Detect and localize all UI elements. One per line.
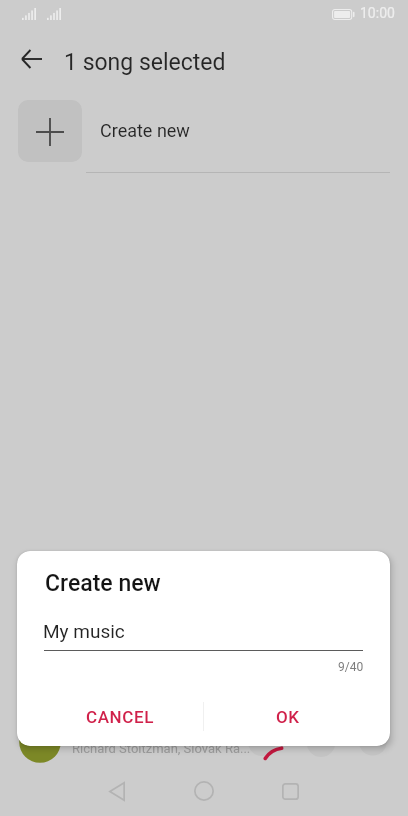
staticText: 9/40 <box>338 660 364 674</box>
staticText: CANCEL <box>86 707 155 727</box>
staticText: Richard Stoltzman, Slovak Ra... <box>72 741 251 756</box>
staticText: My music <box>43 620 125 642</box>
button[interactable]: CANCEL <box>66 696 174 738</box>
staticText: 10:00 <box>360 5 395 21</box>
button[interactable]: Back <box>7 35 55 83</box>
staticText: Create new <box>100 120 190 141</box>
button[interactable]: Home <box>181 768 226 814</box>
button[interactable]: Create new <box>0 86 408 174</box>
staticText: 1 song selected <box>64 49 226 76</box>
staticText: OK <box>276 707 300 727</box>
button[interactable]: Back <box>94 768 139 814</box>
staticText: Create new <box>45 570 161 597</box>
button[interactable]: OK <box>234 696 342 738</box>
button[interactable]: Recent apps <box>268 768 313 814</box>
